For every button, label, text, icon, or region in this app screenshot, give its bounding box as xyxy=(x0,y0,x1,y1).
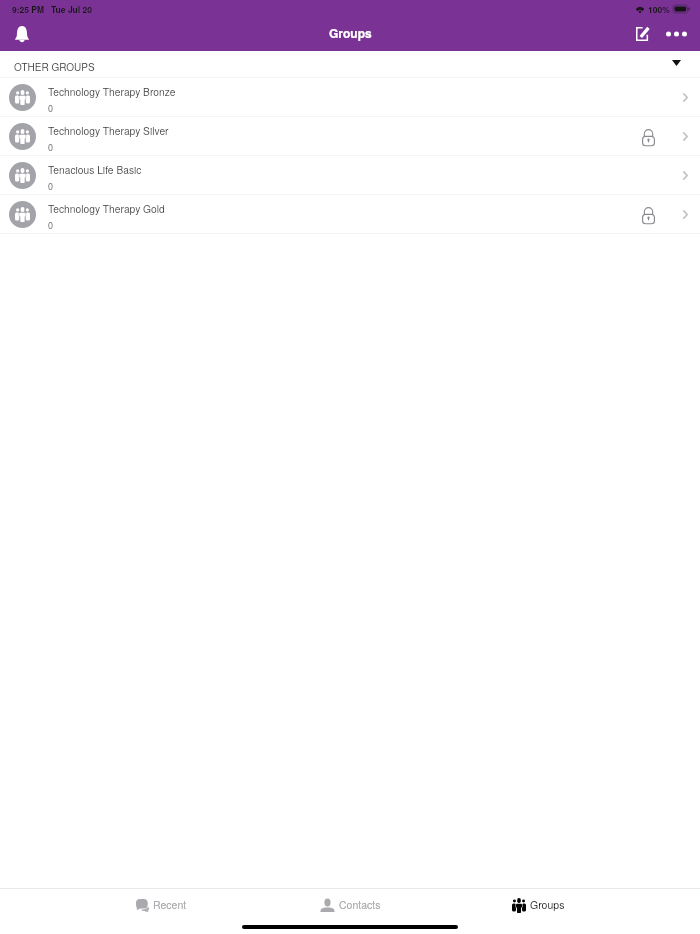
button[interactable]: Groups xyxy=(493,889,583,923)
staticText: Contacts xyxy=(339,897,381,912)
staticText: Tenacious Life Basic xyxy=(48,162,142,177)
staticText: 0 xyxy=(48,180,54,193)
staticText: OTHER GROUPS xyxy=(14,60,95,74)
staticText: 100% xyxy=(648,3,670,15)
staticText: 9:25 PM xyxy=(12,3,45,15)
button[interactable]: Compose new message xyxy=(628,20,656,48)
staticText: Technology Therapy Bronze xyxy=(48,84,176,99)
staticText: Tue Jul 20 xyxy=(51,3,92,15)
button[interactable]: Notifications xyxy=(7,20,35,48)
button[interactable]: More options xyxy=(662,20,690,48)
staticText: 0 xyxy=(48,141,54,154)
staticText: Groups xyxy=(530,897,565,912)
staticText: 0 xyxy=(48,219,54,232)
staticText: Technology Therapy Silver xyxy=(48,123,169,138)
button[interactable]: OTHER GROUPS xyxy=(0,51,700,77)
staticText: 0 xyxy=(48,102,54,115)
other: Collapse section xyxy=(672,60,681,66)
button[interactable]: Tenacious Life Basic xyxy=(0,156,700,194)
staticText: Technology Therapy Gold xyxy=(48,201,165,216)
button[interactable]: Technology Therapy Bronze xyxy=(0,78,700,116)
button[interactable]: Technology Therapy Gold xyxy=(0,195,700,233)
staticText: Recent xyxy=(153,897,187,912)
button[interactable]: Contacts xyxy=(305,889,395,923)
button[interactable]: Technology Therapy Silver xyxy=(0,117,700,155)
button[interactable]: Recent xyxy=(116,889,206,923)
staticText: Groups xyxy=(329,24,372,41)
